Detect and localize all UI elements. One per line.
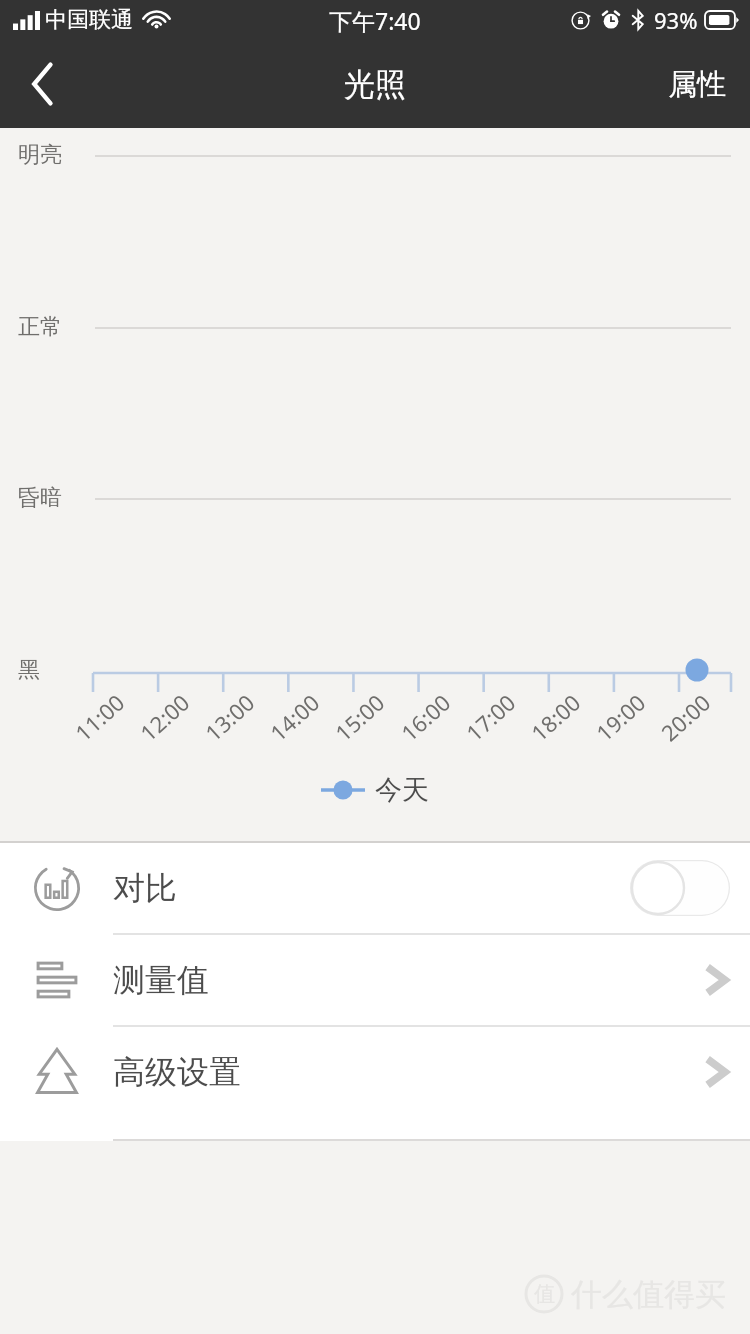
button[interactable]: 对比 (0, 843, 750, 933)
button[interactable]: 今天 (321, 773, 429, 807)
staticText: 中国联通 (45, 6, 133, 34)
button[interactable]: 高级设置 (0, 1027, 750, 1117)
button[interactable]: 返回 (0, 40, 86, 128)
staticText: 黑 (18, 656, 40, 684)
staticText: 18:00 (524, 687, 587, 747)
staticText: 下午7:40 (329, 5, 421, 36)
staticText: 对比 (113, 868, 177, 908)
staticText: 16:00 (394, 687, 457, 747)
staticText: 14:00 (263, 687, 326, 747)
staticText: 13:00 (198, 687, 261, 747)
staticText: 属性 (668, 66, 726, 103)
staticText: 11:00 (68, 687, 131, 747)
staticText: 正常 (18, 313, 62, 341)
staticText: 15:00 (328, 687, 391, 747)
button[interactable]: 属性 (644, 40, 750, 128)
staticText: 93% (654, 5, 698, 35)
button[interactable]: 测量值 (0, 935, 750, 1025)
staticText: 什么值得买 (571, 1275, 726, 1314)
staticText: 值 (534, 1281, 555, 1307)
staticText: 今天 (375, 773, 429, 807)
staticText: 19:00 (589, 687, 652, 747)
staticText: 光照 (344, 65, 406, 104)
staticText: 明亮 (18, 141, 62, 169)
staticText: 20:00 (654, 687, 717, 747)
staticText: 昏暗 (18, 484, 62, 512)
staticText: 17:00 (459, 687, 522, 747)
staticText: 高级设置 (113, 1052, 241, 1092)
staticText: 12:00 (133, 687, 196, 747)
button[interactable]: 对比开关 (630, 860, 730, 916)
staticText: 测量值 (113, 960, 209, 1000)
